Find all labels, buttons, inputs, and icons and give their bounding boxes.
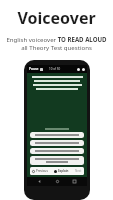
button[interactable]: Flag question	[77, 68, 80, 71]
button[interactable]	[30, 156, 84, 165]
staticText: English voiceover TO READ ALOUD all Theo…	[4, 35, 109, 52]
button[interactable]: Explain	[54, 169, 69, 173]
staticText: Pause	[29, 67, 39, 71]
button[interactable]: Recent apps	[70, 177, 79, 186]
staticText: Voiceover	[0, 7, 113, 29]
staticText: 10 of 50	[49, 67, 61, 71]
button[interactable]: Back	[35, 177, 44, 186]
button[interactable]: Previous	[32, 169, 48, 173]
button[interactable]	[30, 132, 84, 138]
staticText: Previous	[36, 169, 48, 173]
button[interactable]: Next	[75, 169, 82, 173]
button[interactable]: Home	[53, 177, 62, 186]
button[interactable]	[30, 148, 84, 154]
button[interactable]: More options	[82, 68, 85, 71]
button[interactable]: Pause	[29, 67, 43, 71]
staticText: Explain	[58, 169, 69, 173]
button[interactable]	[30, 140, 84, 146]
